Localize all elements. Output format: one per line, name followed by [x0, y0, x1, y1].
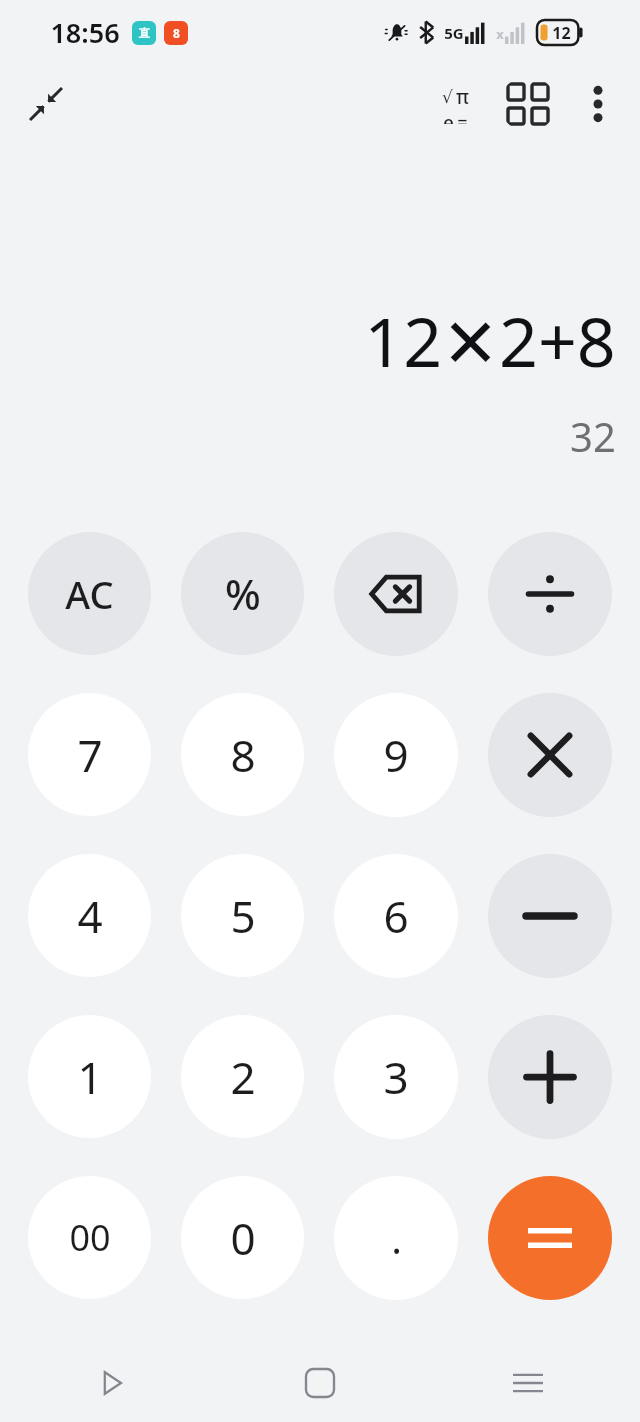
staticText: .	[391, 1211, 402, 1265]
button[interactable]: Collapse	[18, 76, 74, 132]
staticText: 12	[552, 22, 571, 44]
button[interactable]: Scientific mode	[426, 75, 484, 133]
staticText: 8	[173, 25, 180, 41]
staticText: 12✕2+8	[364, 294, 616, 387]
button[interactable]: AC	[28, 532, 151, 655]
button[interactable]: 8	[181, 693, 304, 816]
staticText: 18:56	[50, 14, 120, 51]
button[interactable]: Recent apps	[492, 1347, 564, 1419]
button[interactable]: More options	[570, 76, 626, 132]
staticText: 3	[383, 1047, 409, 1107]
staticText: 4	[77, 886, 103, 946]
staticText: 7	[77, 725, 103, 785]
staticText: e	[443, 110, 454, 124]
staticText: 5G	[444, 23, 464, 43]
staticText: 9	[383, 725, 409, 785]
button[interactable]: Plus	[488, 1015, 612, 1139]
staticText: 1	[77, 1047, 103, 1107]
button[interactable]: 6	[334, 854, 458, 978]
button[interactable]: Multiply	[488, 693, 612, 817]
staticText: %	[225, 565, 261, 622]
staticText: 0	[230, 1208, 256, 1268]
staticText: =	[457, 110, 468, 124]
staticText: 5	[230, 886, 256, 946]
staticText: 2	[230, 1047, 256, 1107]
staticText: √	[442, 87, 453, 107]
button[interactable]: 2	[181, 1015, 304, 1138]
button[interactable]: Divide	[488, 532, 612, 656]
button[interactable]: Back	[76, 1347, 148, 1419]
button[interactable]: Minus	[488, 854, 612, 978]
button[interactable]: 5	[181, 854, 304, 977]
button[interactable]: .	[334, 1176, 458, 1300]
staticText: 6	[383, 886, 409, 946]
button[interactable]: 9	[334, 693, 458, 817]
staticText: x	[496, 25, 504, 43]
staticText: π	[456, 84, 469, 110]
staticText: 8	[230, 725, 256, 785]
staticText: 00	[69, 1213, 111, 1262]
staticText: 32	[570, 409, 616, 463]
button[interactable]: Equals	[488, 1176, 612, 1300]
button[interactable]: Backspace	[334, 532, 458, 656]
button[interactable]: %	[181, 532, 304, 655]
button[interactable]: Home	[284, 1347, 356, 1419]
button[interactable]: 7	[28, 693, 151, 816]
button[interactable]: 4	[28, 854, 151, 977]
staticText: 直	[139, 26, 150, 40]
button[interactable]: 1	[28, 1015, 151, 1138]
button[interactable]: Unit converter	[500, 76, 556, 132]
button[interactable]: 00	[28, 1176, 151, 1299]
button[interactable]: 0	[181, 1176, 304, 1299]
staticText: AC	[65, 568, 114, 620]
button[interactable]: 3	[334, 1015, 458, 1139]
